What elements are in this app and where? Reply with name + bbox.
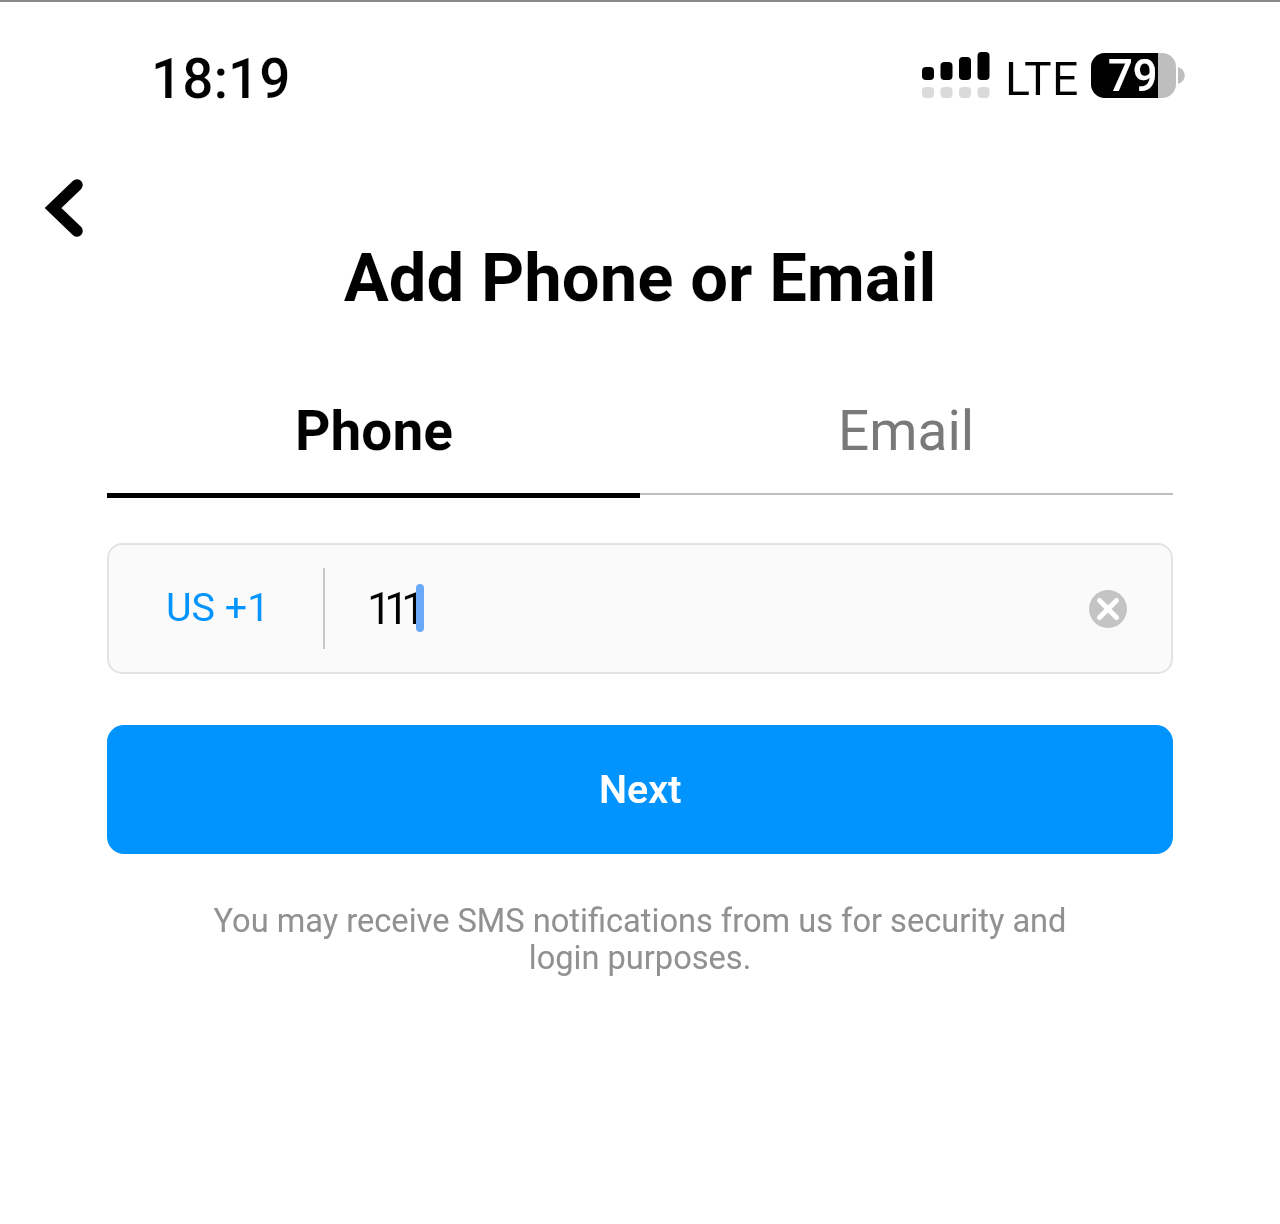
staticText: LTE bbox=[1005, 52, 1079, 106]
staticText: Add Phone or Email bbox=[0, 239, 1280, 318]
staticText: Email bbox=[838, 399, 975, 463]
button[interactable]: Phone bbox=[107, 401, 640, 493]
staticText: 79 bbox=[1108, 51, 1158, 102]
staticText: Next bbox=[599, 766, 682, 812]
staticText: 111 bbox=[367, 583, 419, 635]
button[interactable]: Back bbox=[13, 155, 117, 259]
button[interactable]: US +1 bbox=[107, 543, 323, 674]
button[interactable]: Clear text bbox=[1070, 571, 1146, 647]
button[interactable]: Email bbox=[640, 401, 1173, 493]
staticText: 18:19 bbox=[151, 47, 291, 111]
button[interactable]: Next bbox=[107, 725, 1173, 854]
staticText: US +1 bbox=[166, 584, 270, 630]
staticText: You may receive SMS notifications from u… bbox=[205, 902, 1075, 976]
staticText: Phone bbox=[295, 399, 453, 463]
